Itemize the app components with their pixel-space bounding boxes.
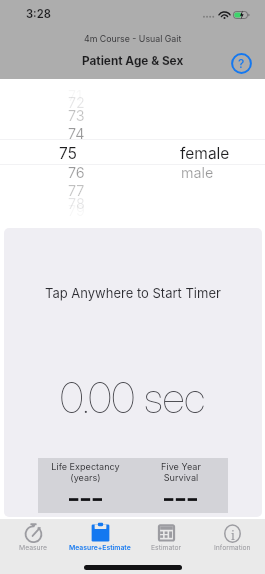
staticText: 75 [59, 144, 78, 163]
staticText: 77 [68, 182, 85, 199]
staticText: 72 [68, 94, 85, 111]
staticText: Estimator [151, 543, 182, 551]
staticText: male [181, 164, 214, 181]
staticText: i [231, 527, 235, 543]
staticText: 4m Course - Usual Gait [84, 33, 182, 44]
staticText: Information [214, 543, 251, 551]
staticText: 74 [68, 125, 85, 142]
staticText: female [180, 144, 230, 163]
button[interactable]: i [199, 519, 265, 555]
staticText: 78 [68, 195, 85, 212]
staticText: 3:28 [26, 7, 51, 21]
staticText: Tap Anywhere to Start Timer [45, 285, 221, 301]
staticText: Measure+Estimate [69, 543, 131, 551]
staticText: 71 [68, 87, 82, 104]
staticText: Patient Age & Sex [82, 54, 184, 68]
button[interactable]: Estimator [133, 519, 199, 555]
staticText: 0.00 sec [60, 372, 206, 423]
staticText: ? [238, 56, 245, 71]
staticText: 76 [68, 164, 85, 181]
staticText: 73 [68, 107, 85, 124]
staticText: 79 [68, 202, 85, 219]
button[interactable]: Help [231, 53, 252, 74]
button[interactable]: Tap Anywhere to Start Timer [4, 228, 262, 517]
staticText: Measure [19, 543, 48, 551]
staticText: Five Year Survival [161, 461, 201, 483]
button[interactable]: Measure [0, 519, 67, 555]
staticText: Life Expectancy (years) [51, 461, 120, 483]
button[interactable]: Measure+Estimate [67, 519, 133, 555]
